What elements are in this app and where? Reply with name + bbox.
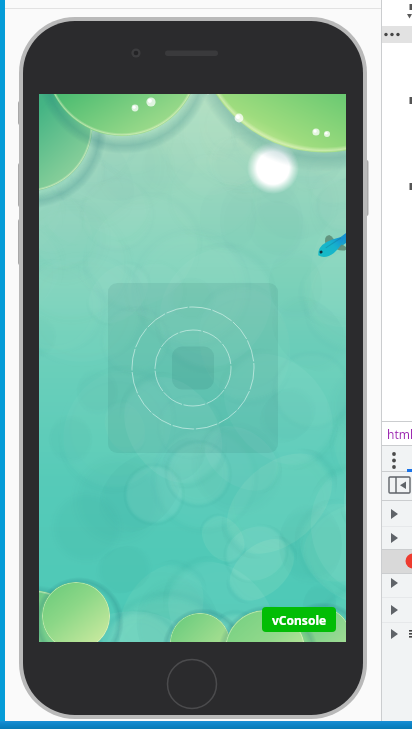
button[interactable]: Customize and control DevTools [386, 448, 404, 469]
button[interactable]: html [382, 422, 412, 445]
staticText: vConsole [272, 612, 327, 628]
button[interactable]: Expand log entry [382, 527, 412, 551]
staticText: html [387, 426, 412, 442]
button[interactable]: Expand log entry [382, 622, 412, 646]
button[interactable]: Scan target area [108, 283, 278, 453]
button[interactable]: Expand log entry [382, 598, 412, 622]
button[interactable]: Toggle console sidebar [385, 474, 409, 496]
button[interactable]: More tabs [382, 26, 412, 43]
button[interactable]: Expand log entry [382, 574, 412, 598]
button[interactable]: Home [167, 659, 217, 709]
button[interactable]: vConsole [262, 607, 336, 632]
button[interactable]: Expand log entry [382, 503, 412, 527]
button[interactable]: Expand log entry [382, 550, 412, 574]
